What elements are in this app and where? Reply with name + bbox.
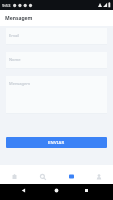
button[interactable]: Search (29, 165, 57, 184)
button[interactable]: ENVIAR (6, 137, 107, 148)
button[interactable]: Email (6, 28, 107, 45)
staticText: Mensagem (5, 15, 33, 22)
staticText: Nome (9, 57, 21, 62)
staticText: Email (9, 33, 20, 38)
button[interactable]: Home (50, 184, 63, 197)
button[interactable]: Recents (80, 184, 93, 197)
button[interactable]: Nome (6, 52, 107, 69)
button[interactable]: Back (17, 184, 30, 197)
button[interactable]: Profile (85, 165, 113, 184)
staticText: 9:53 (2, 2, 11, 8)
button[interactable]: Home (0, 165, 29, 184)
button[interactable]: Messages (57, 165, 85, 184)
staticText: ENVIAR (48, 140, 65, 146)
staticText: Mensagem (9, 81, 30, 86)
button[interactable]: Mensagem (6, 76, 107, 114)
